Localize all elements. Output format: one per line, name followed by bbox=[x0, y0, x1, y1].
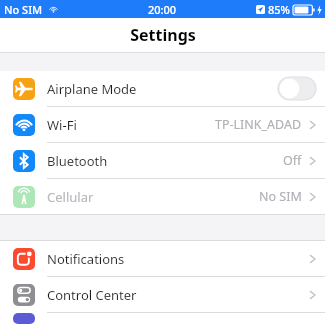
button[interactable]: Airplane Mode toggle bbox=[278, 77, 316, 100]
staticText: 85% bbox=[268, 2, 290, 17]
staticText: TP-LINK_ADAD bbox=[215, 116, 302, 133]
staticText: Wi-Fi bbox=[47, 116, 77, 134]
staticText: No SIM bbox=[4, 2, 43, 17]
staticText: Control Center bbox=[47, 286, 137, 304]
button[interactable]: Airplane Mode bbox=[0, 71, 325, 107]
staticText: Off bbox=[283, 152, 302, 169]
button[interactable]: Control Center bbox=[0, 277, 325, 313]
staticText: Settings bbox=[130, 24, 196, 46]
button[interactable]: Notifications bbox=[0, 241, 325, 277]
staticText: Notifications bbox=[47, 250, 125, 268]
staticText: Cellular bbox=[47, 188, 94, 206]
staticText: Bluetooth bbox=[47, 152, 108, 170]
staticText: 20:00 bbox=[148, 2, 177, 17]
button[interactable]: Wi-Fi bbox=[0, 107, 325, 143]
button[interactable] bbox=[0, 313, 325, 324]
button[interactable]: Cellular bbox=[0, 179, 325, 214]
staticText: Airplane Mode bbox=[47, 80, 137, 98]
button[interactable]: Bluetooth bbox=[0, 143, 325, 179]
staticText: No SIM bbox=[259, 188, 302, 205]
